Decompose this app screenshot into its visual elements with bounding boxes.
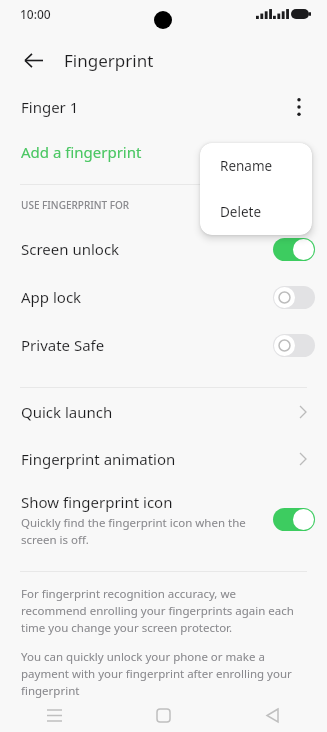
- button[interactable]: Private Safe: [0, 321, 327, 369]
- button[interactable]: Rename: [200, 143, 312, 189]
- staticText: Private Safe: [21, 335, 105, 355]
- button[interactable]: Delete: [200, 189, 312, 235]
- button[interactable]: Fingerprint animation: [0, 435, 327, 482]
- button[interactable]: Finger 1: [0, 84, 327, 130]
- button[interactable]: More options: [285, 93, 313, 121]
- staticText: Delete: [220, 203, 262, 221]
- button[interactable]: On: [273, 238, 315, 261]
- staticText: Fingerprint: [64, 49, 154, 72]
- staticText: App lock: [21, 287, 82, 307]
- button[interactable]: Off: [273, 286, 315, 309]
- staticText: Quick launch: [21, 402, 113, 422]
- staticText: Screen unlock: [21, 239, 120, 259]
- button[interactable]: Off: [273, 334, 315, 357]
- staticText: 10:00: [20, 6, 51, 22]
- button[interactable]: Add a fingerprint: [0, 130, 327, 174]
- staticText: For fingerprint recognition accuracy, we…: [21, 586, 301, 636]
- button[interactable]: App lock: [0, 273, 327, 321]
- button[interactable]: Home: [109, 699, 218, 732]
- button[interactable]: Back: [218, 699, 327, 732]
- button[interactable]: On: [273, 508, 315, 531]
- button[interactable]: Recents: [0, 699, 109, 732]
- button[interactable]: Back: [18, 45, 48, 75]
- staticText: Show fingerprint icon: [21, 492, 173, 512]
- button[interactable]: Quick launch: [0, 388, 327, 435]
- staticText: Rename: [220, 157, 273, 175]
- staticText: You can quickly unlock your phone or mak…: [21, 649, 301, 699]
- staticText: Finger 1: [21, 97, 79, 117]
- staticText: Fingerprint animation: [21, 449, 176, 469]
- staticText: Add a fingerprint: [21, 142, 142, 162]
- staticText: Quickly find the fingerprint icon when t…: [21, 515, 261, 547]
- button[interactable]: Screen unlock: [0, 225, 327, 273]
- staticText: USE FINGERPRINT FOR: [21, 198, 130, 212]
- button[interactable]: Show fingerprint icon: [0, 482, 327, 559]
